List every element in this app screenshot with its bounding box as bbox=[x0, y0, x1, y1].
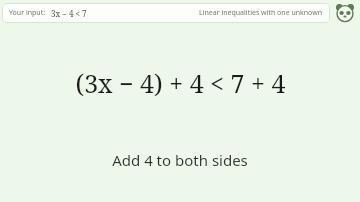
button[interactable]: App logo bbox=[334, 2, 356, 24]
button[interactable]: Your input: bbox=[2, 3, 330, 23]
staticText: Your input: bbox=[9, 8, 46, 18]
staticText: Linear inequalities with one unknown bbox=[199, 8, 323, 18]
staticText: (3x − 4) + 4 < 7 + 4 bbox=[75, 66, 286, 100]
staticText: Add 4 to both sides bbox=[112, 150, 248, 170]
staticText: 3x − 4 < 7 bbox=[51, 8, 87, 19]
